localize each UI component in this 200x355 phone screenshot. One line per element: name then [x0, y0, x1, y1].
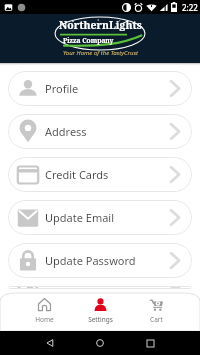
staticText: Address: [45, 124, 87, 139]
staticText: Pizza Company: [63, 36, 114, 45]
button[interactable]: Back: [41, 334, 59, 352]
staticText: Your Home of the TastyCrust: [63, 49, 138, 57]
staticText: 2:22: [182, 2, 198, 13]
staticText: Update Email: [45, 210, 115, 225]
staticText: Home: [35, 315, 54, 324]
staticText: Cart: [150, 315, 163, 324]
button[interactable]: Update Password: [8, 243, 192, 278]
button[interactable]: Credit Cards: [8, 157, 192, 192]
button[interactable]: Settings: [72, 298, 128, 331]
button[interactable]: Cart: [128, 298, 184, 331]
button[interactable]: Home: [91, 334, 109, 352]
button[interactable]: Update Email: [8, 200, 192, 235]
staticText: Update Password: [45, 253, 136, 268]
button[interactable]: Home: [16, 298, 72, 331]
button[interactable]: Profile: [8, 71, 192, 106]
staticText: Credit Cards: [45, 167, 109, 182]
staticText: Order History: [45, 286, 116, 289]
staticText: Profile: [45, 81, 79, 96]
staticText: NorthernLights: [59, 18, 142, 32]
button[interactable]: Order History: [8, 286, 192, 289]
button[interactable]: Recent apps: [141, 334, 159, 352]
staticText: Settings: [88, 315, 113, 324]
button[interactable]: Address: [8, 114, 192, 149]
